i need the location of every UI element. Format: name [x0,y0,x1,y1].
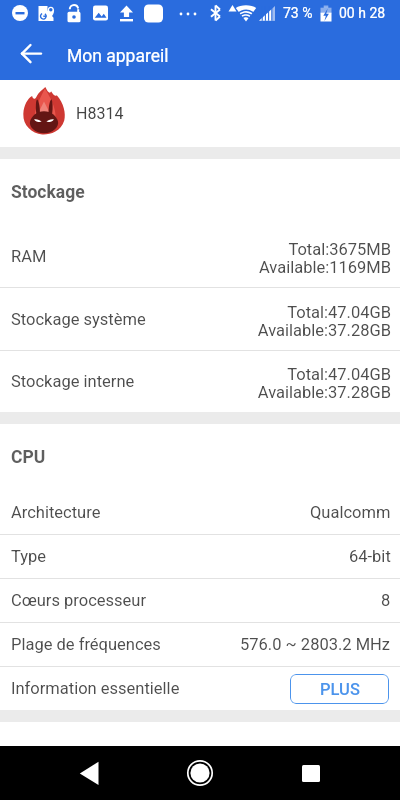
staticText: Plage de fréquences [11,635,161,654]
staticText: H8314 [76,104,124,123]
staticText: 8 [381,591,391,610]
button[interactable]: Stockage interne [0,351,400,412]
button[interactable]: H8314 [0,80,400,147]
button[interactable]: Home [173,746,227,800]
staticText: Cœurs processeur [11,591,146,610]
staticText: Information essentielle [11,679,180,698]
staticText: RAM [11,247,47,266]
staticText: CPU [11,447,46,468]
button[interactable]: Cœurs processeur [0,579,400,622]
staticText: 576.0 ~ 2803.2 MHz [240,635,391,654]
staticText: 64-bit [349,547,391,566]
staticText: Mon appareil [67,46,169,67]
button[interactable]: PLUS [290,674,389,704]
staticText: Total:47.04GB Available:37.28GB [257,303,391,340]
button[interactable]: Plage de fréquences [0,623,400,666]
staticText: 73 % [283,5,313,21]
staticText: Architecture [11,503,101,522]
staticText: PLUS [320,680,360,699]
staticText: Total:47.04GB Available:37.28GB [257,365,391,402]
staticText: Stockage interne [11,372,135,391]
staticText: 00 h 28 [339,5,386,21]
staticText: Stockage [11,182,85,203]
staticText: Qualcomm [310,503,391,522]
button[interactable]: Stockage système [0,288,400,350]
button[interactable]: Type [0,535,400,578]
staticText: Stockage système [11,310,146,329]
button[interactable]: Architecture [0,491,400,534]
staticText: Type [11,547,47,566]
staticText: Total:3675MB Available:1169MB [258,240,391,277]
button[interactable]: Back [7,32,55,80]
button[interactable]: RAM [0,225,400,287]
button[interactable]: Back [62,752,116,794]
button[interactable]: Recent apps [284,746,338,800]
